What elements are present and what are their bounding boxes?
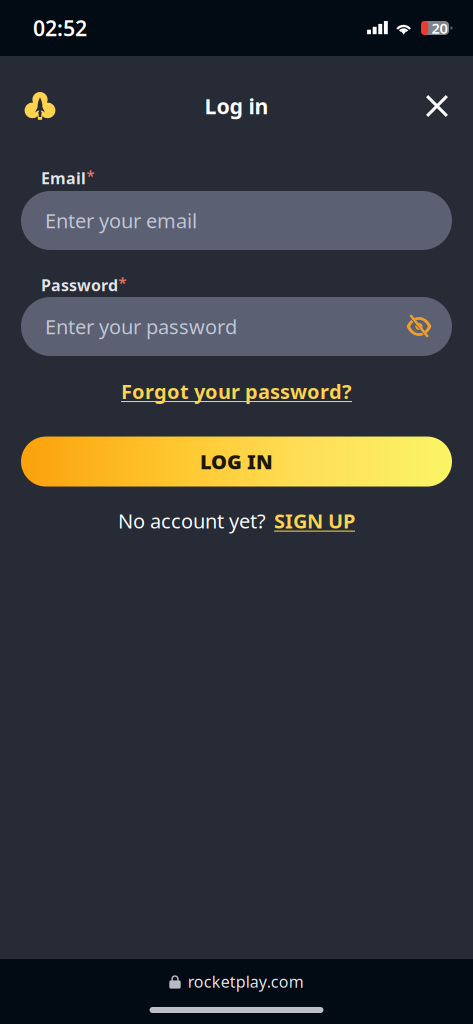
- staticText: 02:52: [33, 14, 87, 42]
- staticText: SIGN UP: [274, 508, 355, 534]
- button[interactable]: Forgot your password?: [111, 374, 362, 409]
- staticText: Enter your password: [45, 313, 237, 340]
- staticText: Password: [41, 274, 118, 296]
- staticText: 20: [432, 18, 448, 38]
- button[interactable]: SIGN UP: [274, 508, 355, 534]
- staticText: Log in: [204, 92, 268, 120]
- staticText: *: [86, 166, 94, 185]
- staticText: No account yet?: [118, 508, 266, 534]
- staticText: LOG IN: [200, 448, 273, 475]
- staticText: Email: [41, 167, 86, 189]
- staticText: Forgot your password?: [121, 378, 352, 405]
- button[interactable]: LOG IN: [21, 437, 452, 487]
- staticText: *: [118, 273, 126, 292]
- button[interactable]: RocketPlay: [16, 82, 64, 130]
- staticText: rocketplay.com: [188, 971, 304, 992]
- button[interactable]: Close: [413, 82, 461, 130]
- staticText: Enter your email: [45, 207, 197, 234]
- button[interactable]: Show password: [400, 306, 438, 346]
